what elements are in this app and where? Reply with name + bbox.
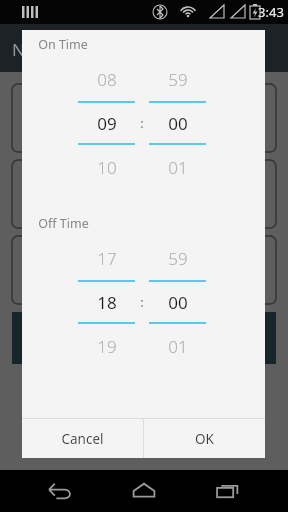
staticText: Off Time (38, 215, 89, 232)
staticText: N (12, 38, 25, 61)
staticText: : (140, 293, 144, 311)
staticText: 00 (168, 291, 188, 314)
button[interactable]: 17 (78, 236, 135, 368)
staticText: 08 (97, 68, 117, 91)
staticText: : (140, 114, 144, 132)
staticText: 09 (97, 112, 117, 135)
staticText: 01 (168, 335, 188, 358)
button[interactable]: 59 (149, 57, 206, 189)
staticText: 00 (168, 112, 188, 135)
button[interactable]: Back (36, 470, 84, 512)
button[interactable]: 59 (149, 236, 206, 368)
staticText: 10 (97, 156, 117, 179)
staticText: 3:43 (258, 3, 284, 21)
staticText: 59 (168, 68, 188, 91)
staticText: 59 (168, 247, 188, 270)
staticText: 01 (168, 156, 188, 179)
staticText: OK (195, 430, 214, 448)
button[interactable]: Cancel (22, 419, 143, 458)
button[interactable]: 08 (78, 57, 135, 189)
staticText: 17 (97, 247, 117, 270)
staticText: 18 (97, 291, 117, 314)
button[interactable]: Home (120, 470, 168, 512)
staticText: On Time (38, 36, 88, 53)
staticText: Cancel (61, 430, 104, 448)
staticText: 19 (97, 335, 117, 358)
button[interactable]: OK (144, 419, 265, 458)
button[interactable]: Recent apps (204, 470, 252, 512)
